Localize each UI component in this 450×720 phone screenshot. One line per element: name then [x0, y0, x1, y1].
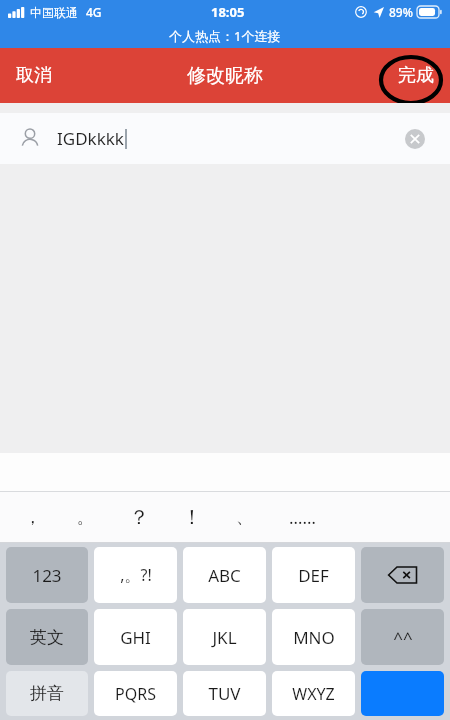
- staticText: ABC: [208, 564, 241, 587]
- button[interactable]: Clear text: [404, 128, 426, 150]
- button[interactable]: 123: [6, 547, 88, 603]
- staticText: 123: [32, 564, 62, 587]
- button[interactable]: ……: [271, 491, 333, 543]
- staticText: ^^: [393, 626, 413, 649]
- staticText: WXYZ: [292, 683, 335, 705]
- staticText: 89%: [389, 4, 413, 20]
- staticText: IGDkkkk: [57, 127, 124, 150]
- button[interactable]: ABC: [183, 547, 266, 603]
- button[interactable]: DEF: [272, 547, 355, 603]
- button[interactable]: 英文: [6, 609, 88, 665]
- button[interactable]: 取消: [4, 56, 64, 95]
- staticText: MNO: [293, 626, 335, 649]
- button[interactable]: PQRS: [94, 671, 177, 716]
- button[interactable]: 拼音: [6, 671, 88, 716]
- button[interactable]: 完成: [386, 56, 446, 95]
- button[interactable]: Backspace: [361, 547, 444, 603]
- staticText: 。: [77, 507, 94, 528]
- staticText: DEF: [298, 564, 329, 587]
- staticText: GHI: [120, 626, 151, 649]
- button[interactable]: ？: [112, 491, 165, 543]
- button[interactable]: ！: [165, 491, 218, 543]
- button[interactable]: IGDkkkk: [0, 113, 450, 164]
- button[interactable]: JKL: [183, 609, 266, 665]
- staticText: 18:05: [211, 3, 245, 21]
- staticText: PQRS: [115, 683, 156, 705]
- staticText: 修改昵称: [187, 64, 263, 88]
- button[interactable]: 、: [218, 491, 271, 543]
- button[interactable]: 。: [59, 491, 112, 543]
- staticText: 取消: [16, 64, 52, 87]
- staticText: 个人热点：1个连接: [169, 27, 281, 45]
- staticText: JKL: [212, 626, 237, 649]
- button[interactable]: MNO: [272, 609, 355, 665]
- button[interactable]: WXYZ: [272, 671, 355, 716]
- button[interactable]: GHI: [94, 609, 177, 665]
- button[interactable]: TUV: [183, 671, 266, 716]
- staticText: ，: [24, 507, 41, 528]
- button[interactable]: ,。?!: [94, 547, 177, 603]
- staticText: ？: [129, 505, 149, 530]
- button[interactable]: ^^: [361, 609, 444, 665]
- staticText: 英文: [30, 627, 64, 648]
- staticText: TUV: [208, 682, 241, 705]
- button[interactable]: Enter: [361, 671, 444, 716]
- staticText: 、: [236, 507, 253, 528]
- staticText: 完成: [398, 64, 434, 87]
- staticText: ,。?!: [120, 564, 152, 586]
- staticText: ！: [182, 505, 202, 530]
- staticText: 4G: [86, 4, 102, 20]
- staticText: 拼音: [30, 683, 64, 704]
- staticText: 中国联通: [30, 5, 78, 20]
- button[interactable]: ，: [6, 491, 59, 543]
- staticText: ……: [289, 506, 316, 529]
